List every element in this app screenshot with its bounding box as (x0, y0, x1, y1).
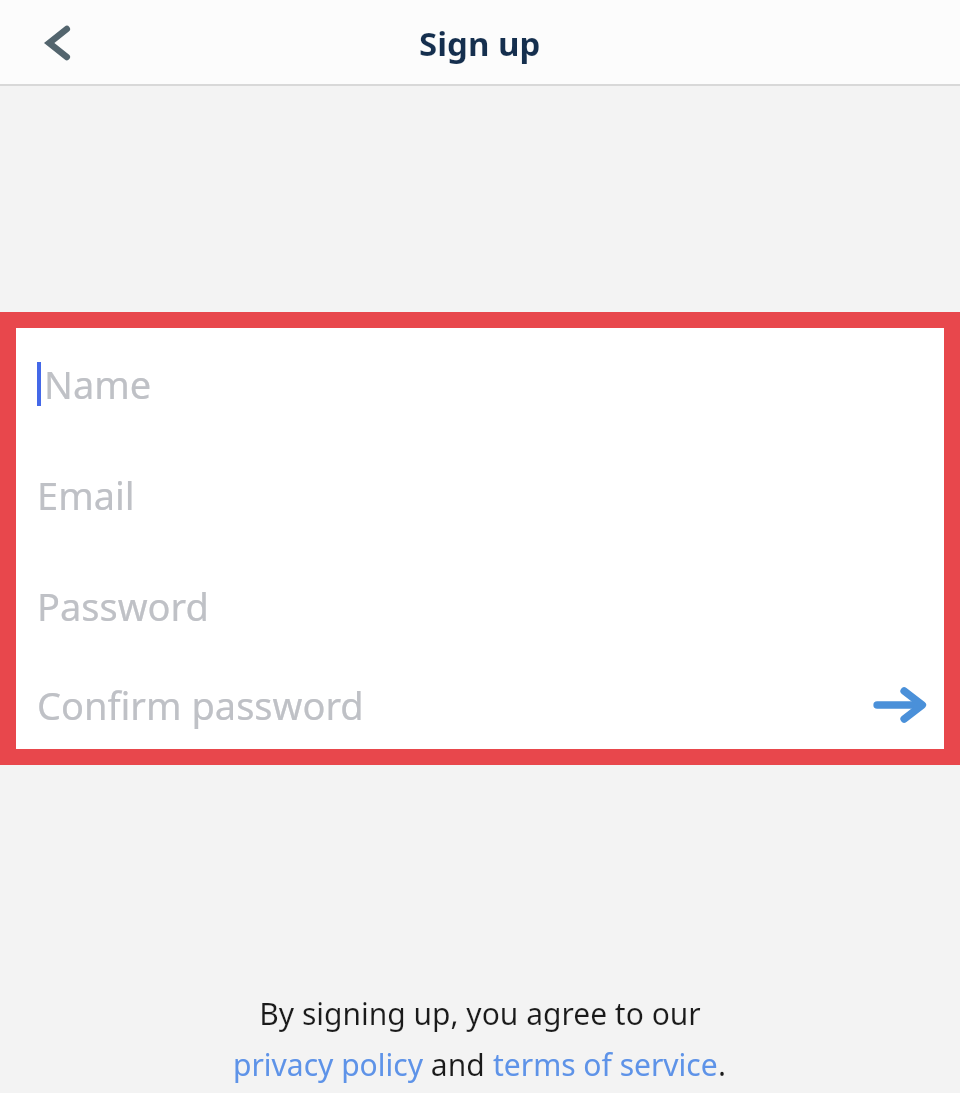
staticText: Confirm password (37, 679, 364, 731)
staticText: privacy policy (233, 1044, 423, 1085)
button[interactable]: terms of service (493, 1044, 718, 1085)
staticText: By signing up, you agree to our (259, 993, 701, 1034)
staticText: and (423, 1044, 493, 1085)
button[interactable]: Password (16, 550, 944, 661)
button[interactable]: Confirm password (16, 661, 944, 749)
staticText: Name (44, 358, 152, 410)
staticText: Password (37, 580, 209, 632)
button[interactable]: privacy policy (233, 1044, 423, 1085)
staticText: terms of service (493, 1044, 718, 1085)
button[interactable]: Back (16, 1, 100, 85)
button[interactable]: Name (16, 328, 944, 439)
staticText: Email (37, 469, 135, 521)
button[interactable]: Submit (860, 665, 940, 745)
staticText: . (718, 1044, 727, 1085)
button[interactable]: Email (16, 439, 944, 550)
staticText: Sign up (419, 21, 541, 66)
